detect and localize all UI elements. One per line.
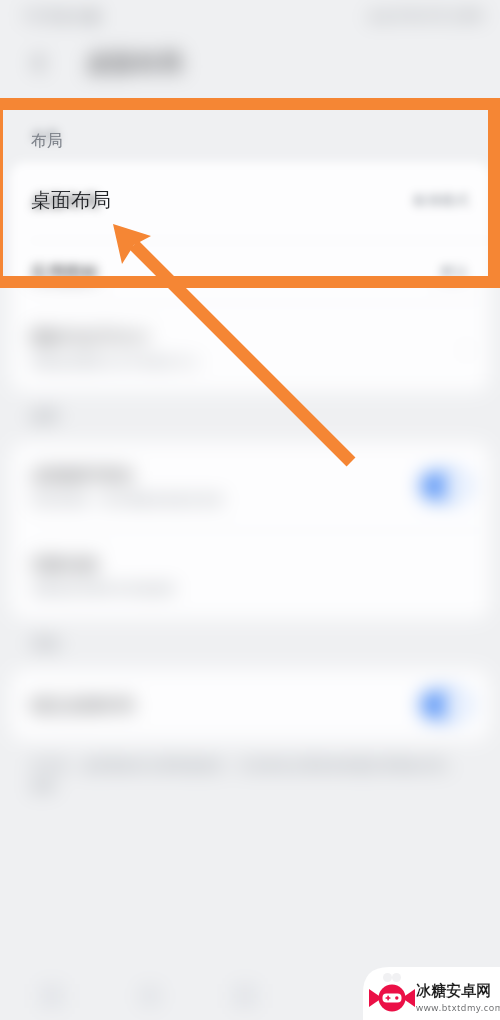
staticText: 标准模式 (413, 192, 469, 210)
staticText: 图标与文字大小 (31, 327, 150, 348)
staticText: 桌面布局 (86, 48, 182, 78)
staticText: 布局 (31, 131, 63, 151)
staticText: 锁定桌面布局 (31, 695, 133, 716)
button[interactable]: 锁定桌面布局 (10, 669, 490, 741)
button[interactable]: 切换动效 (10, 531, 490, 619)
staticText: 桌面布局 (31, 191, 99, 212)
button[interactable]: 桌面循环滑动 (10, 442, 490, 530)
button[interactable]: 图标与文字大小 (10, 304, 490, 392)
staticText: 标准模式 (413, 192, 469, 210)
staticText: 应用图标 (31, 262, 99, 283)
staticText: 默认 (441, 263, 469, 281)
staticText: 桌面布局 (86, 48, 182, 78)
staticText: 调整桌面图标与文字的显示大小 (31, 354, 199, 369)
button[interactable]: 锁定桌面布局 (10, 669, 490, 741)
button[interactable]: 切换动效 (10, 531, 490, 619)
button[interactable]: 应用图标 (10, 241, 490, 303)
staticText: 调整桌面图标与文字的显示大小 (31, 354, 199, 369)
staticText: 布局 (31, 128, 59, 146)
button[interactable]: 应用图标 (10, 241, 490, 303)
staticText: 桌面布局 (31, 188, 111, 213)
staticText: 切换动效 (31, 554, 99, 575)
staticText: 开启后，桌面图标的位置将被锁定，无法移动位置或者卸载应用图标内容， 需要 (30, 757, 459, 795)
staticText: 锁定桌面布局 (31, 695, 133, 716)
staticText: www.btxtdmy.com (416, 1001, 500, 1013)
staticText: 桌面布局 (31, 191, 99, 212)
button[interactable]: 桌面布局 (10, 162, 490, 240)
button[interactable]: 图标与文字大小 (10, 304, 490, 392)
staticText: 默认 (441, 263, 469, 281)
staticText: 开启后，桌面图标的位置将被锁定，无法移动位置或者卸载应用图标内容， 需要 (30, 757, 459, 795)
button[interactable]: 桌面循环滑动 (10, 442, 490, 530)
staticText: 切换动效 (31, 554, 99, 575)
staticText: 冰糖安卓网 (416, 982, 491, 1001)
staticText: 桌面循环滑动 (31, 465, 133, 486)
staticText: 图标与文字大小 (31, 327, 150, 348)
button[interactable]: 桌面布局 (10, 162, 490, 240)
staticText: 应用图标 (31, 262, 99, 283)
staticText: 布局 (31, 128, 59, 146)
staticText: 桌面循环滑动 (31, 465, 133, 486)
